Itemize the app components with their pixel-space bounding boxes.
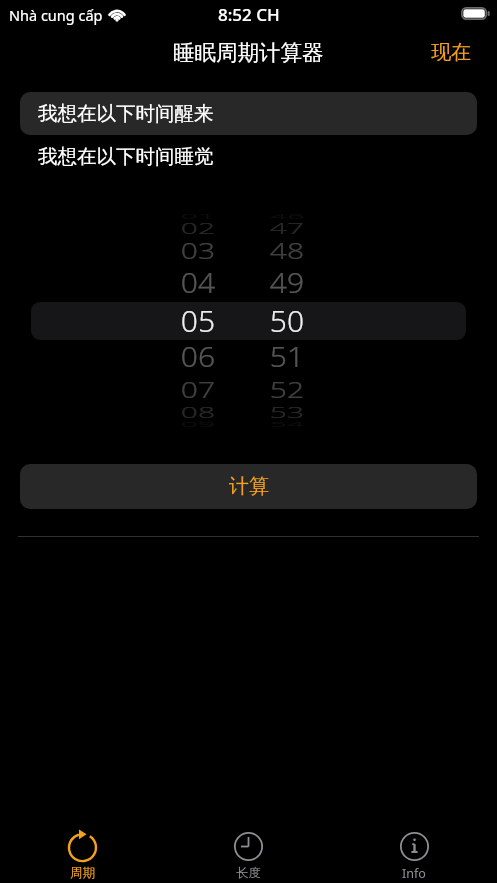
other: Cycles — [67, 831, 98, 862]
button[interactable]: Cycles — [0, 817, 165, 881]
button[interactable]: Info — [331, 817, 497, 882]
staticText: 03 — [173, 235, 223, 266]
button[interactable]: 现在 — [411, 32, 497, 73]
staticText: Nhà cung cấp — [9, 5, 103, 25]
staticText: 47 — [262, 219, 312, 238]
staticText: 05 — [173, 300, 223, 341]
staticText: 周期 — [70, 865, 95, 881]
button[interactable]: 计算 — [20, 464, 477, 509]
staticText: 我想在以下时间睡觉 — [38, 144, 214, 169]
staticText: 02 — [173, 219, 223, 238]
button[interactable]: 我想在以下时间醒来 — [20, 92, 477, 135]
button[interactable]: Length — [165, 817, 331, 881]
staticText: 睡眠周期计算器 — [173, 39, 324, 66]
button[interactable]: Hour — [138, 206, 258, 436]
staticText: 8:52 CH — [218, 3, 280, 26]
staticText: 现在 — [431, 40, 471, 65]
staticText: 我想在以下时间醒来 — [38, 101, 214, 126]
staticText: 50 — [262, 300, 312, 341]
staticText: 49 — [262, 264, 312, 301]
other: Info — [399, 831, 430, 862]
staticText: 07 — [173, 374, 223, 405]
button[interactable]: Minute — [227, 206, 347, 436]
staticText: 长度 — [236, 865, 261, 881]
staticText: 计算 — [229, 474, 269, 499]
staticText: 46 — [262, 211, 312, 222]
staticText: 53 — [262, 403, 312, 422]
staticText: 01 — [173, 211, 223, 222]
other: Length — [233, 831, 264, 862]
staticText: 51 — [262, 338, 312, 375]
staticText: 08 — [173, 403, 223, 422]
staticText: 04 — [173, 264, 223, 301]
staticText: 09 — [173, 419, 223, 430]
button[interactable]: 我想在以下时间睡觉 — [20, 135, 477, 178]
staticText: 48 — [262, 235, 312, 266]
staticText: Info — [402, 865, 426, 882]
staticText: 52 — [262, 374, 312, 405]
staticText: 06 — [173, 338, 223, 375]
staticText: 54 — [262, 419, 312, 430]
